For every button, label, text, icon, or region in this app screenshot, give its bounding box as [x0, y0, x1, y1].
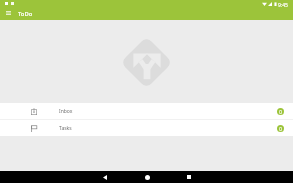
button[interactable]: Recent apps — [178, 171, 200, 183]
staticText: ToDo — [18, 10, 33, 18]
button[interactable]: Tasks — [0, 120, 293, 136]
staticText: 9:45 — [278, 2, 288, 9]
staticText: 0 — [279, 126, 282, 132]
button[interactable]: Back — [94, 171, 116, 183]
button[interactable]: Home — [136, 171, 158, 183]
staticText: 0 — [279, 109, 282, 115]
staticText: Inbox — [59, 108, 73, 115]
staticText: Tasks — [59, 125, 72, 132]
button[interactable]: Inbox — [0, 103, 293, 119]
button[interactable]: Open navigation drawer — [2, 7, 14, 19]
